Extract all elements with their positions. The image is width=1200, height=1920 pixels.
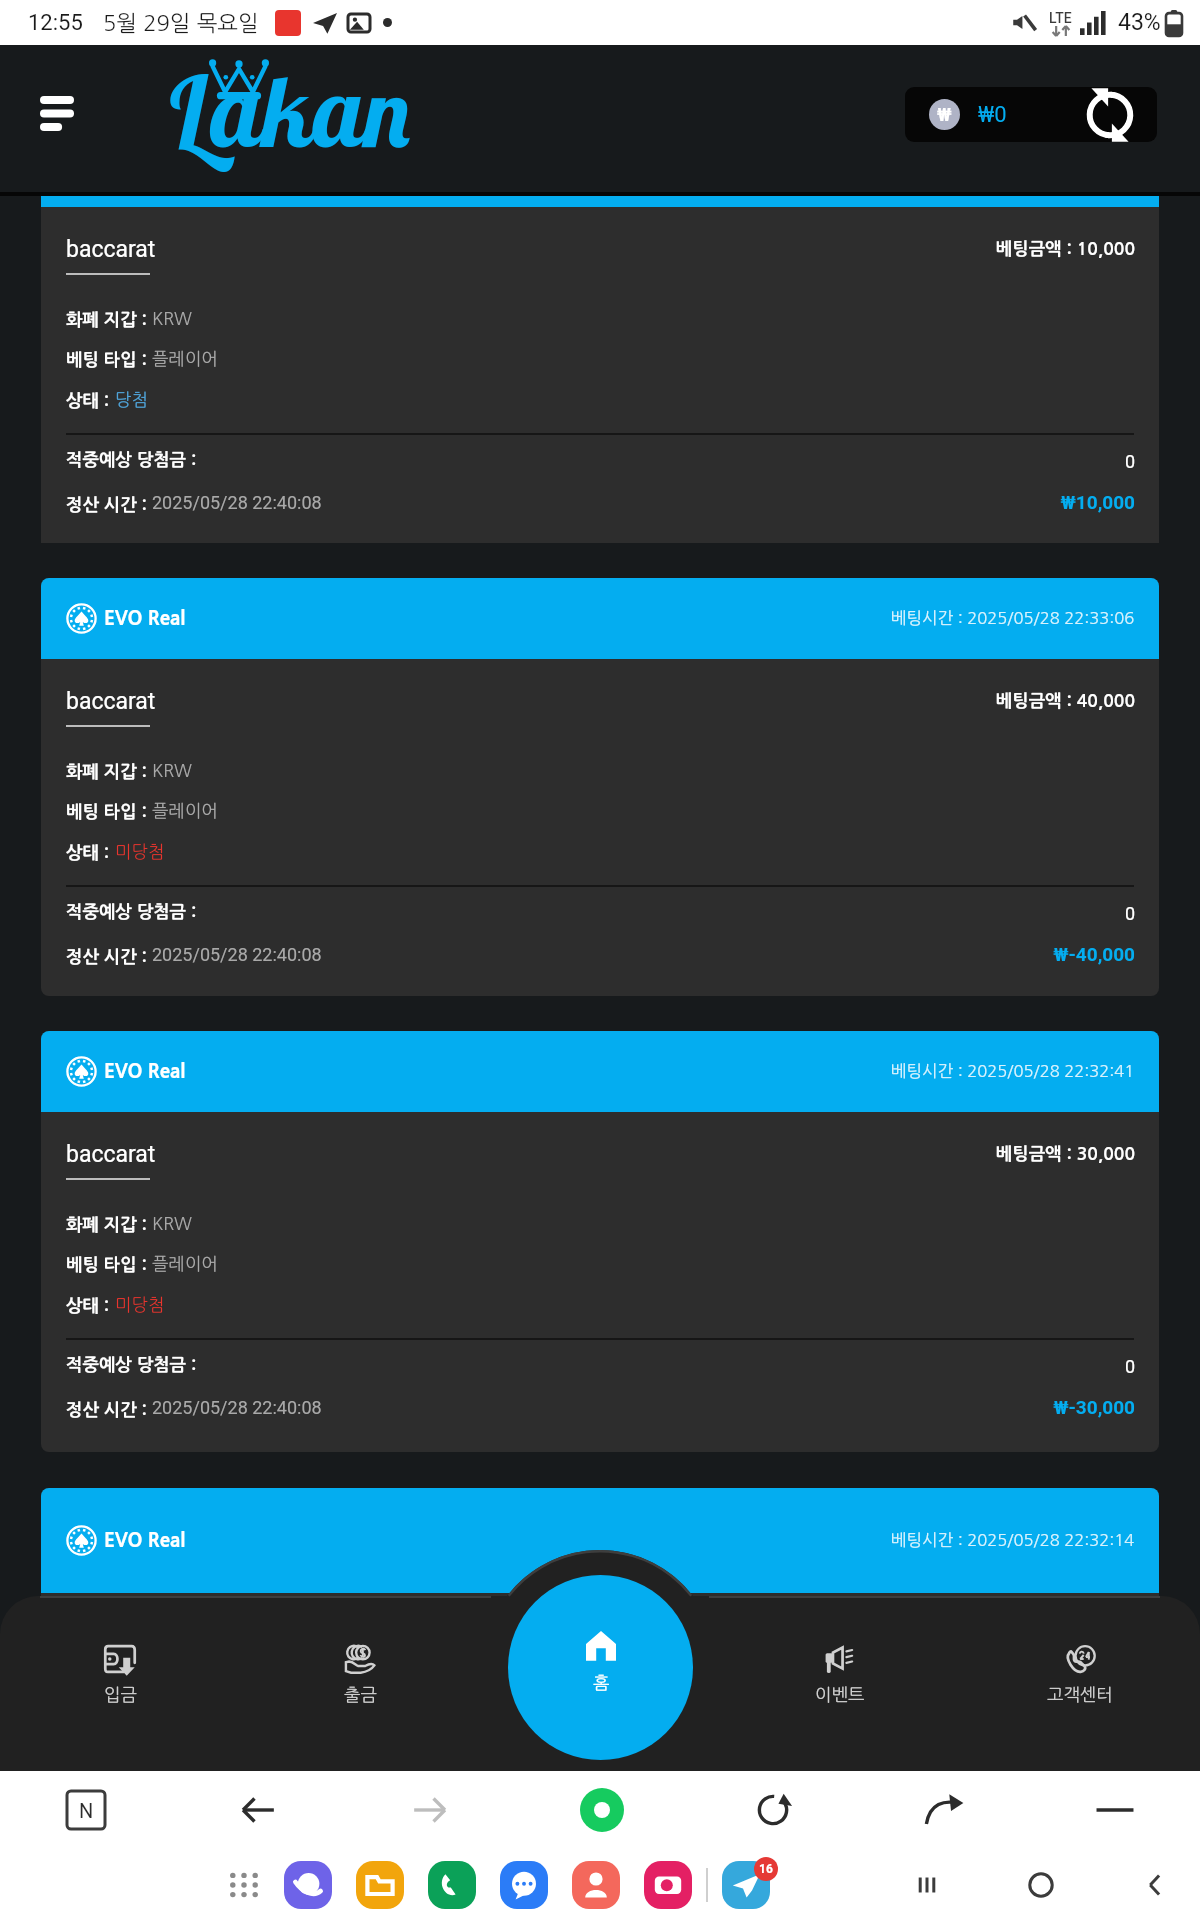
button[interactable]: Recents xyxy=(910,1868,944,1902)
button[interactable]: App shortcut xyxy=(428,1861,476,1909)
staticText: baccarat xyxy=(66,1622,156,1649)
staticText: 43% xyxy=(1118,9,1161,36)
staticText: 플레이어 xyxy=(152,802,218,820)
staticText: 플레이어 xyxy=(152,1255,218,1273)
button[interactable]: 입금 xyxy=(0,1596,240,1827)
button[interactable]: Naver xyxy=(67,1791,105,1829)
staticText: 화폐 지갑 : xyxy=(66,1216,152,1233)
button[interactable]: Apps xyxy=(228,1869,260,1901)
staticText: KRW xyxy=(152,310,193,328)
staticText: 0 xyxy=(41,451,1135,472)
staticText: baccarat xyxy=(66,236,156,263)
staticText: 베팅금액 : 20,000 xyxy=(41,1626,1135,1643)
staticText: 16 xyxy=(759,1862,773,1876)
staticText: 상태 : xyxy=(66,1778,115,1795)
staticText: 당첨 xyxy=(115,391,148,409)
button[interactable]: App shortcut xyxy=(500,1861,548,1909)
staticText: 12:55 xyxy=(28,10,83,36)
staticText: ₩10,000 xyxy=(41,491,1135,513)
staticText: 플레이어 xyxy=(152,350,218,368)
staticText: 상태 : xyxy=(66,392,115,409)
staticText: 적중예상 당첨금 : xyxy=(66,451,202,468)
staticText: 미당첨 xyxy=(115,843,165,861)
button[interactable]: Menu xyxy=(26,82,88,144)
staticText: EVO Real xyxy=(104,609,185,628)
staticText: baccarat xyxy=(66,688,156,715)
button[interactable]: Back xyxy=(236,1788,280,1832)
staticText: 2025/05/28 22:40:08 xyxy=(152,1397,322,1418)
staticText: 베팅시간 : 2025/05/28 22:32:14 xyxy=(891,1532,1135,1549)
button[interactable]: Forward xyxy=(408,1788,452,1832)
button[interactable]: Reload xyxy=(751,1788,795,1832)
button[interactable]: 고객센터 xyxy=(960,1596,1200,1827)
staticText: 2025/05/28 22:40:08 xyxy=(152,944,322,965)
staticText: KRW xyxy=(152,1215,193,1233)
staticText: 적중예상 당첨금 : xyxy=(66,903,202,920)
button[interactable]: EVO Real xyxy=(41,1031,1159,1452)
staticText: 홈 xyxy=(593,1674,610,1692)
staticText: 베팅시간 : 2025/05/28 22:33:06 xyxy=(891,610,1135,627)
staticText: baccarat xyxy=(66,1141,156,1168)
staticText: N xyxy=(79,1799,94,1822)
button[interactable]: App shortcut xyxy=(722,1861,770,1909)
staticText: 0 xyxy=(41,1356,1135,1377)
button[interactable]: 이벤트 xyxy=(720,1596,960,1827)
button[interactable]: EVO Real xyxy=(41,578,1159,996)
staticText: 상태 : xyxy=(66,844,115,861)
staticText: 이벤트 xyxy=(815,1686,865,1704)
staticText: ₩-30,000 xyxy=(41,1396,1135,1418)
button[interactable]: baccarat xyxy=(41,196,1159,543)
staticText: ₩-20,000 xyxy=(41,1877,1135,1899)
button[interactable]: App shortcut xyxy=(644,1861,692,1909)
button[interactable]: 출금 xyxy=(240,1596,480,1827)
staticText: 상태 : xyxy=(66,1297,115,1314)
button[interactable]: App shortcut xyxy=(284,1861,332,1909)
staticText: 입금 xyxy=(104,1686,137,1704)
staticText: 베팅금액 : 10,000 xyxy=(41,240,1135,257)
staticText: 5월 29일 목요일 xyxy=(103,12,259,34)
staticText: Lakan xyxy=(165,49,415,172)
button[interactable]: Menu xyxy=(1093,1788,1137,1832)
staticText: 정산 시간 : xyxy=(66,496,152,513)
button[interactable]: App shortcut xyxy=(356,1861,404,1909)
staticText: ₩-40,000 xyxy=(41,943,1135,965)
staticText: 화폐 지갑 : xyxy=(66,763,152,780)
button[interactable]: 홈 xyxy=(508,1575,693,1760)
staticText: 미당첨 xyxy=(115,1296,165,1314)
button[interactable]: Home xyxy=(580,1788,624,1832)
staticText: 베팅 타입 : xyxy=(66,1256,152,1273)
staticText: ₩ xyxy=(937,104,952,125)
staticText: 정산 시간 : xyxy=(66,948,152,965)
staticText: 2025/05/28 22:40:08 xyxy=(152,492,322,513)
staticText: EVO Real xyxy=(104,1062,185,1081)
button[interactable]: Balance ₩0, refresh xyxy=(905,87,1157,142)
staticText: ₩0 xyxy=(978,102,1007,128)
staticText: 적중예상 당첨금 : xyxy=(66,1356,202,1373)
staticText: 2025/05/28 22:40:08 xyxy=(152,1878,322,1899)
staticText: 베팅시간 : 2025/05/28 22:32:41 xyxy=(891,1063,1135,1080)
button[interactable]: Lakan logo xyxy=(160,45,460,192)
staticText: 0 xyxy=(41,903,1135,924)
button[interactable]: App shortcut xyxy=(572,1861,620,1909)
staticText: 화폐 지갑 : xyxy=(66,1697,152,1714)
staticText: 베팅금액 : 40,000 xyxy=(41,692,1135,709)
staticText: 베팅 타입 : xyxy=(66,803,152,820)
staticText: 화폐 지갑 : xyxy=(66,311,152,328)
staticText: 정산 시간 : xyxy=(66,1401,152,1418)
staticText: 베팅금액 : 30,000 xyxy=(41,1145,1135,1162)
button[interactable]: Home button xyxy=(1024,1868,1058,1902)
button[interactable]: Share xyxy=(922,1788,966,1832)
button[interactable]: Back button xyxy=(1138,1868,1172,1902)
staticText: EVO Real xyxy=(104,1531,185,1550)
staticText: LTE xyxy=(1049,10,1072,26)
button[interactable]: EVO Real xyxy=(41,1488,1159,1920)
staticText: 베팅 타입 : xyxy=(66,351,152,368)
staticText: 출금 xyxy=(344,1686,377,1704)
